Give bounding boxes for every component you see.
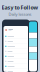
button[interactable] — [5, 44, 27, 49]
button[interactable] — [5, 59, 27, 64]
button[interactable] — [5, 39, 27, 44]
button[interactable] — [5, 34, 27, 39]
staticText: Easy to Follow — [1, 4, 38, 11]
button[interactable] — [5, 64, 27, 69]
button[interactable] — [5, 54, 27, 59]
button[interactable] — [5, 49, 27, 54]
staticText: Daily lessons — [8, 12, 31, 17]
button[interactable] — [5, 69, 27, 72]
